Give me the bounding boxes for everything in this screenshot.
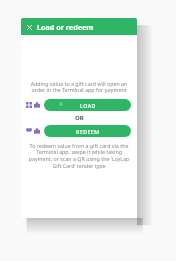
staticText: Adding value to a gift card will open an… — [25, 80, 133, 94]
staticText: REDEEM — [76, 128, 100, 135]
button[interactable]: Scan gift card — [26, 102, 40, 108]
staticText: OR — [75, 114, 84, 122]
staticText: Load or redeem — [37, 22, 94, 32]
staticText: To redeem value from a gift card via the… — [25, 142, 133, 170]
button[interactable]: Close — [24, 22, 34, 32]
button[interactable]: Swipe gift card — [26, 128, 40, 134]
staticText: LOAD — [80, 102, 96, 109]
button[interactable]: REDEEM — [44, 125, 131, 137]
button[interactable]: LOAD — [44, 99, 131, 111]
